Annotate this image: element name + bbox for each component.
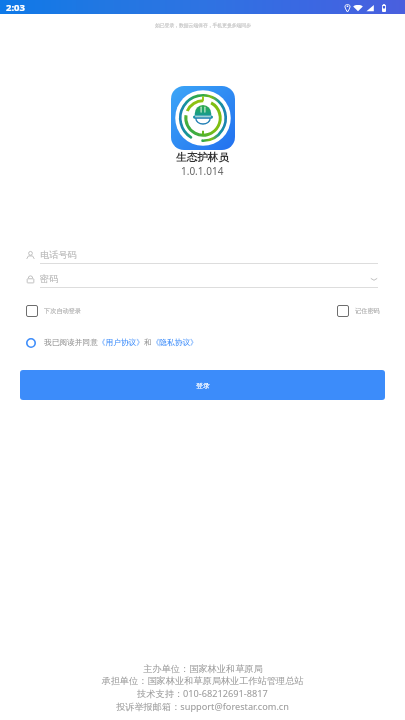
staticText: 主办单位：国家林业和草原局 xyxy=(143,663,263,675)
staticText: 技术支持：010-68212691-8817 xyxy=(137,687,268,700)
staticText: 如已登录，数据云端保存，手机更换多端同步 xyxy=(155,22,251,28)
staticText: 生态护林员 xyxy=(176,151,229,164)
staticText: 登录 xyxy=(196,381,210,390)
button[interactable]: 登录 xyxy=(20,370,385,400)
button[interactable]: 下次自动登录 xyxy=(26,305,82,317)
staticText: 承担单位：国家林业和草原局林业工作站管理总站 xyxy=(101,675,304,687)
staticText: 我已阅读并同意《用户协议》和《隐私协议》 xyxy=(44,338,198,348)
button[interactable]: 记住密码 xyxy=(337,305,380,317)
staticText: 投诉举报邮箱：support@forestar.com.cn xyxy=(116,700,289,713)
staticText: 1.0.1.014 xyxy=(181,164,224,178)
other: Show password xyxy=(370,275,378,283)
staticText: 记住密码 xyxy=(355,307,380,315)
button[interactable]: 我已阅读并同意《用户协议》和《隐私协议》 xyxy=(26,338,198,348)
staticText: 下次自动登录 xyxy=(44,307,82,315)
staticText: 2:03 xyxy=(6,1,25,14)
staticText: 密码 xyxy=(40,273,59,285)
staticText: 电话号码 xyxy=(40,249,77,261)
